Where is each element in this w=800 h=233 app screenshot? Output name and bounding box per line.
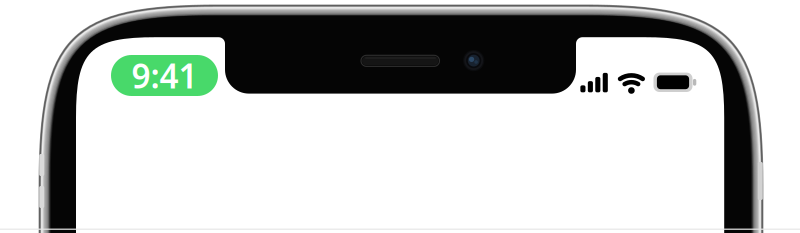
staticText: 9:41 — [131, 53, 197, 98]
button[interactable]: Time 9:41 — [111, 55, 218, 96]
